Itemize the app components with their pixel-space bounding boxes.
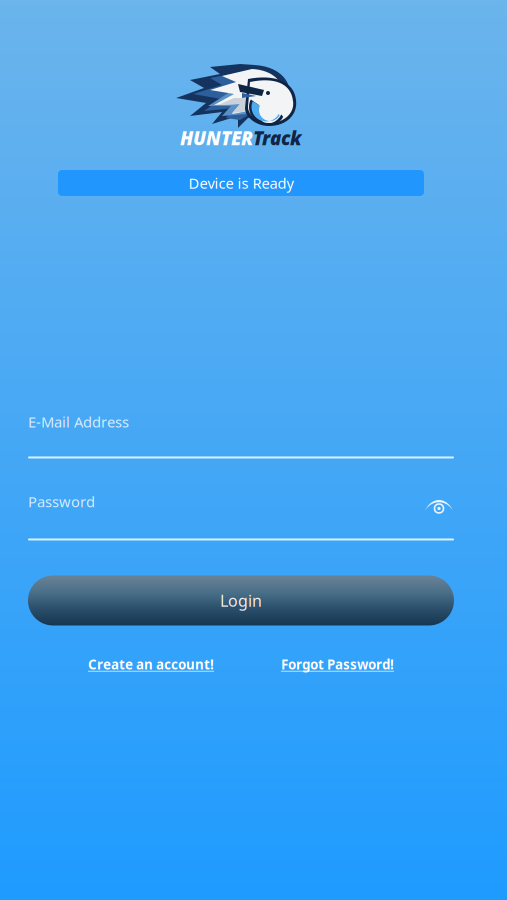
staticText: E-Mail Address — [28, 412, 129, 431]
staticText: Login — [220, 590, 262, 611]
staticText: Device is Ready — [188, 173, 293, 193]
staticText: Password — [28, 492, 95, 511]
button[interactable]: Show password — [424, 491, 454, 511]
button[interactable]: Device is Ready — [58, 170, 424, 196]
button[interactable]: Create an account! — [88, 655, 214, 673]
staticText: Create an account! — [88, 655, 214, 673]
staticText: Track — [253, 126, 302, 150]
staticText: Forgot Password! — [281, 655, 394, 673]
staticText: HUNTER — [180, 126, 253, 150]
button[interactable]: Forgot Password! — [281, 655, 394, 673]
button[interactable]: Login — [28, 575, 454, 625]
